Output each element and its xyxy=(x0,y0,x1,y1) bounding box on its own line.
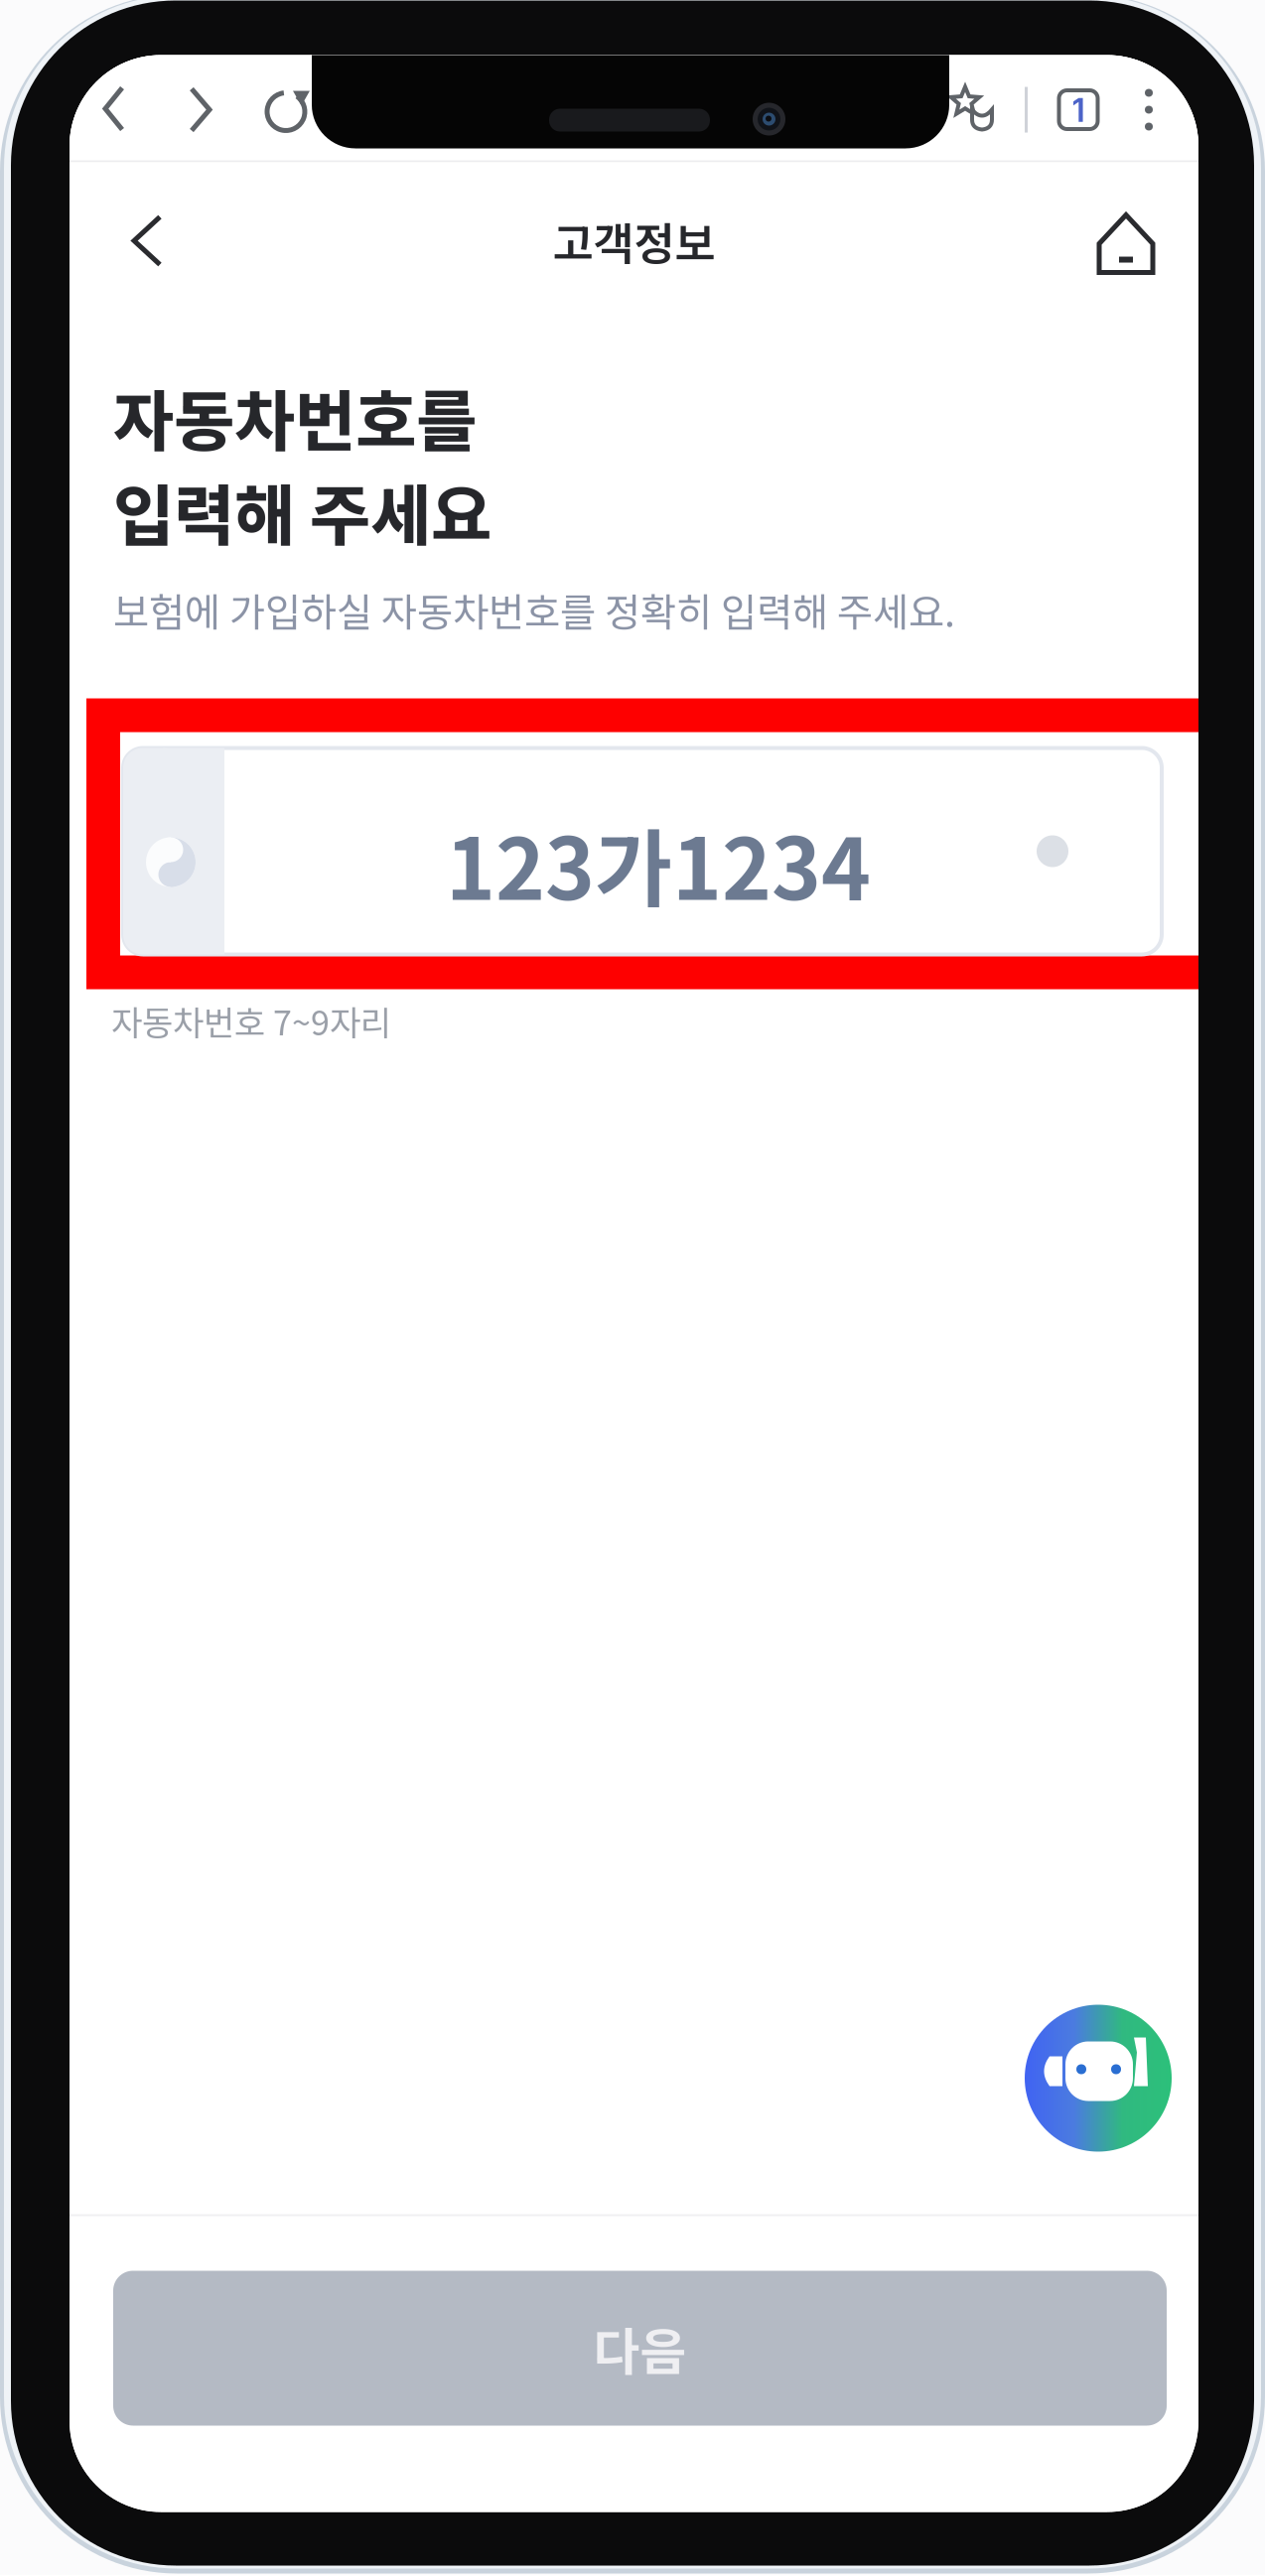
button[interactable]: Menu xyxy=(1121,75,1177,144)
staticText: 입력해 주세요 xyxy=(113,463,492,559)
button[interactable]: Back xyxy=(78,75,148,144)
button[interactable]: Chat bot xyxy=(1025,2005,1172,2152)
button[interactable]: Back xyxy=(112,202,192,279)
staticText: 고객정보 xyxy=(553,209,715,273)
button[interactable]: Collections xyxy=(939,75,1009,144)
button[interactable]: Home xyxy=(1086,202,1166,279)
staticText: 자동차번호를 xyxy=(113,369,477,465)
button[interactable]: Tabs xyxy=(1044,75,1113,144)
staticText: 다음 xyxy=(593,2312,687,2385)
staticText: 123가1234 xyxy=(446,802,871,924)
staticText: 1 xyxy=(1072,90,1085,130)
button[interactable]: 다음 xyxy=(113,2271,1167,2426)
button[interactable]: Forward xyxy=(166,75,235,144)
button[interactable]: Reload xyxy=(253,75,323,144)
staticText: 보험에 가입하실 자동차번호를 정확히 입력해 주세요. xyxy=(113,581,955,638)
staticText: 자동차번호 7~9자리 xyxy=(111,996,391,1045)
